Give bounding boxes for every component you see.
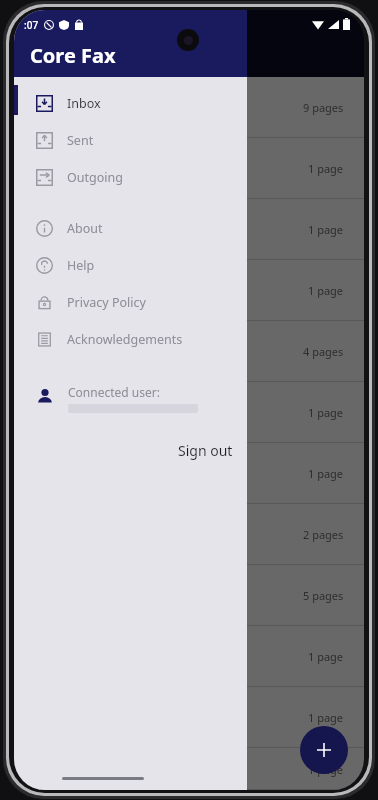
button[interactable]: 1 page [14,138,364,199]
button[interactable]: Sent [14,122,247,159]
button[interactable]: 1 page [14,199,364,260]
staticText: 1 page [308,222,344,237]
button[interactable]: 1 page [14,748,364,790]
staticText: 4 pages [303,344,344,359]
button[interactable]: 5 pages [14,565,364,626]
button[interactable]: 1 page [14,687,364,748]
staticText: Help [67,257,95,274]
button[interactable]: Sign out [164,435,247,466]
button[interactable]: 1 page [14,443,364,504]
button[interactable]: 4 pages [14,321,364,382]
button[interactable]: 1 page [14,626,364,687]
staticText: 1 page [308,405,344,420]
staticText: Core Fax [30,42,116,69]
button[interactable]: Outgoing [14,159,247,196]
button[interactable]: About [14,210,247,247]
staticText: Outgoing [67,169,123,186]
staticText: Acknowledgements [67,331,183,348]
staticText: 1 page [308,283,344,298]
staticText: 1 page [308,161,344,176]
button[interactable]: New fax [300,726,348,774]
button[interactable]: 1 page [14,260,364,321]
button[interactable]: Inbox [14,85,247,122]
staticText: 1 page [308,710,344,725]
button[interactable]: Privacy Policy [14,284,247,321]
staticText: About [67,220,103,237]
staticText: Connected user: [68,384,160,400]
staticText: :07 [24,18,39,32]
button[interactable]: Acknowledgements [14,321,247,358]
staticText: Sign out [178,441,233,460]
staticText: 9 pages [303,100,344,115]
staticText: Inbox [67,95,101,112]
staticText: 5 pages [303,588,344,603]
staticText: Sent [67,132,94,149]
staticText: 1 page [308,466,344,481]
button[interactable]: 9 pages [14,77,364,138]
staticText: 1 page [308,762,344,777]
staticText: Privacy Policy [67,294,146,311]
staticText: 1 page [308,649,344,664]
staticText: 2 pages [303,527,344,542]
button[interactable]: Help [14,247,247,284]
button[interactable]: 1 page [14,382,364,443]
button[interactable]: 2 pages [14,504,364,565]
